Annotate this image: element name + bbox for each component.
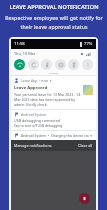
button[interactable]: Android System • Charging this device vi… bbox=[11, 131, 96, 140]
button[interactable]: Add bbox=[79, 193, 90, 204]
staticText: Your personal leave for 13 Mar 2023 - 14… bbox=[14, 92, 81, 107]
staticText: Android System bbox=[21, 112, 47, 117]
staticText: Android System • Charging this device vi… bbox=[21, 133, 93, 138]
button[interactable]: Leave App • now ▾ bbox=[11, 76, 96, 109]
staticText: Manage notifications bbox=[14, 143, 52, 148]
button[interactable]: Quick setting 1 bbox=[28, 59, 39, 70]
button[interactable]: Quick setting 2 bbox=[41, 59, 52, 70]
button[interactable]: Quick setting 5 bbox=[82, 59, 93, 70]
staticText: Clear all bbox=[78, 143, 93, 148]
staticText: Leave Approved bbox=[14, 85, 48, 91]
button[interactable]: Quick setting 3 bbox=[55, 59, 66, 70]
staticText: 11:58 bbox=[14, 41, 25, 47]
staticText: LEAVE APPROVAL NOTIFICATION bbox=[9, 3, 99, 11]
staticText: Thu, 10 Mar bbox=[14, 51, 36, 56]
button[interactable]: Quick setting 0 bbox=[14, 59, 25, 70]
button[interactable]: Quick setting 4 bbox=[68, 59, 79, 70]
staticText: USB debugging connected bbox=[14, 118, 61, 123]
staticText: Leave App • now ▾ bbox=[21, 78, 52, 83]
staticText: 77% bbox=[84, 41, 93, 47]
staticText: Tap to turn off USB debugging bbox=[14, 123, 63, 128]
staticText: their leave approval status bbox=[20, 23, 88, 30]
button[interactable]: Manage notifications bbox=[11, 140, 96, 151]
button[interactable]: Android System bbox=[11, 110, 96, 130]
staticText: Respective employee will get notify for bbox=[5, 14, 103, 21]
